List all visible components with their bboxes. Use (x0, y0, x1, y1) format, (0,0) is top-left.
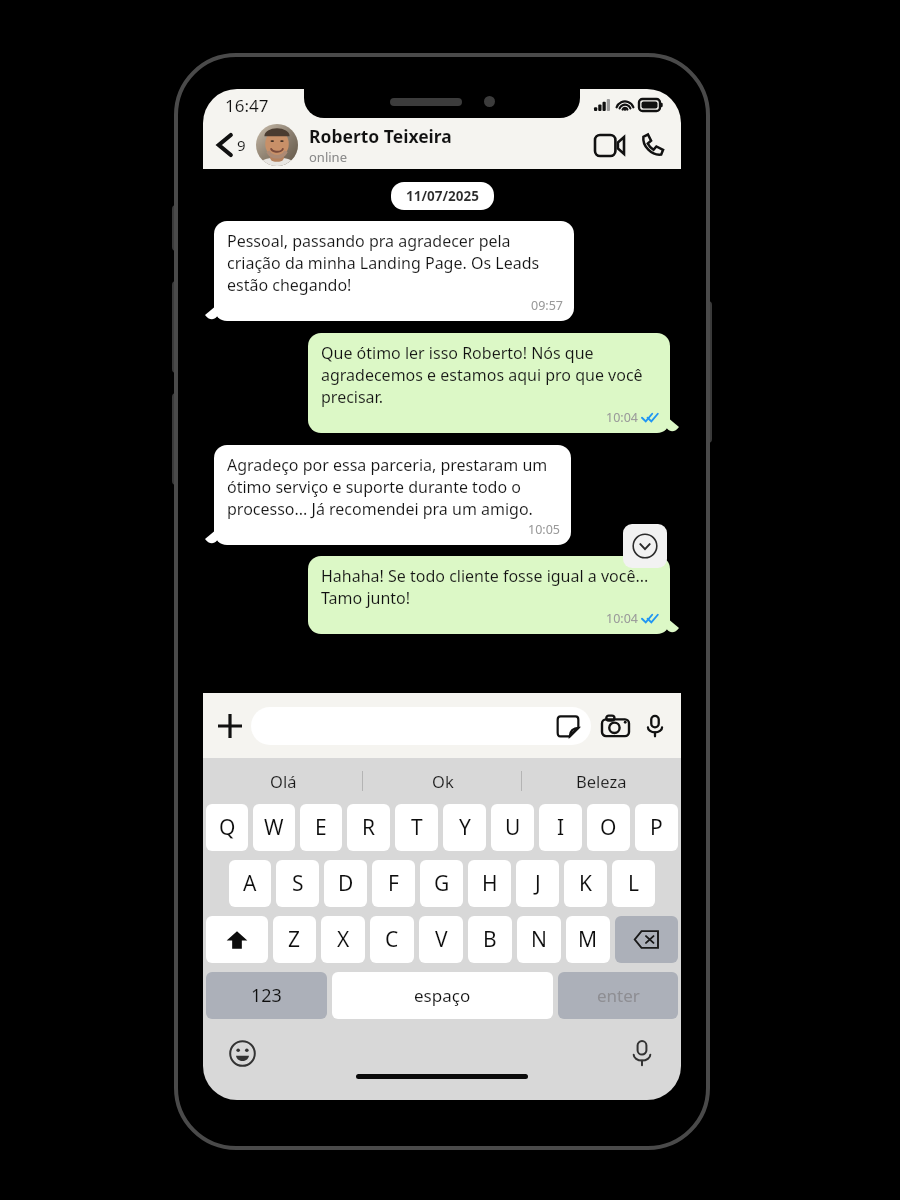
button[interactable]: Hahaha! Se todo cliente fosse igual a vo… (308, 556, 670, 634)
staticText: 9 (237, 135, 246, 155)
button[interactable]: B (468, 916, 512, 963)
button[interactable]: Video call (585, 127, 635, 164)
button[interactable]: P (635, 804, 678, 851)
button[interactable]: Attach (203, 703, 251, 749)
button[interactable]: 11/07/2025 (391, 182, 494, 210)
staticText: Z (288, 925, 301, 954)
button[interactable]: V (419, 916, 463, 963)
staticText: Q (219, 813, 236, 842)
staticText: Roberto Teixeira (309, 124, 452, 148)
button[interactable]: M (566, 916, 610, 963)
button[interactable]: N (517, 916, 561, 963)
button[interactable]: Ok (363, 758, 522, 804)
staticText: J (535, 869, 541, 898)
staticText: N (531, 925, 547, 954)
button[interactable]: L (612, 860, 655, 907)
staticText: 16:47 (225, 94, 269, 117)
staticText: I (557, 813, 565, 842)
staticText: Beleza (576, 770, 627, 792)
button[interactable]: H (468, 860, 511, 907)
button[interactable]: A (229, 860, 271, 907)
staticText: Pessoal, passando pra agradecer pela cri… (227, 230, 563, 296)
button[interactable]: D (324, 860, 367, 907)
staticText: H (482, 869, 498, 898)
button[interactable]: Stickers (557, 715, 591, 737)
staticText: D (338, 869, 354, 898)
button[interactable]: Olá (203, 758, 363, 804)
button[interactable]: Y (443, 804, 486, 851)
button[interactable]: F (372, 860, 415, 907)
button[interactable]: Back, 9 unread (203, 127, 252, 163)
staticText: 09:57 (531, 297, 563, 314)
staticText: T (411, 813, 423, 842)
button[interactable]: X (321, 916, 365, 963)
button[interactable]: 123 (206, 972, 327, 1019)
button[interactable]: T (395, 804, 438, 851)
button[interactable]: Beleza (522, 758, 681, 804)
staticText: W (264, 813, 284, 842)
button[interactable]: Dictate (629, 1040, 655, 1066)
staticText: A (243, 869, 257, 898)
button[interactable]: U (491, 804, 534, 851)
staticText: 10:04 (606, 610, 638, 627)
staticText: online (309, 148, 347, 166)
button[interactable]: Backspace (615, 916, 678, 963)
staticText: 10:04 (606, 409, 638, 426)
staticText: Que ótimo ler isso Roberto! Nós que agra… (321, 342, 659, 408)
staticText: 123 (251, 983, 282, 1008)
staticText: 10:05 (528, 521, 560, 538)
button[interactable]: O (587, 804, 630, 851)
staticText: U (505, 813, 521, 842)
button[interactable]: Z (273, 916, 316, 963)
button[interactable]: Scroll to bottom (623, 524, 667, 568)
button[interactable]: R (347, 804, 390, 851)
button[interactable]: espaço (332, 972, 553, 1019)
staticText: espaço (414, 984, 471, 1007)
button[interactable]: K (564, 860, 607, 907)
staticText: M (578, 925, 598, 954)
button[interactable]: enter (558, 972, 678, 1019)
button[interactable]: J (516, 860, 559, 907)
button[interactable]: W (253, 804, 295, 851)
staticText: P (650, 813, 663, 842)
button[interactable]: E (300, 804, 342, 851)
staticText: Agradeço por essa parceria, prestaram um… (227, 454, 560, 520)
staticText: O (600, 813, 617, 842)
staticText: S (292, 869, 304, 898)
button[interactable]: Camera (591, 705, 640, 747)
button[interactable]: Shift (206, 916, 268, 963)
button[interactable]: Voice call (635, 125, 681, 165)
staticText: C (385, 925, 399, 954)
staticText: R (362, 813, 376, 842)
staticText: X (337, 925, 350, 954)
staticText: L (628, 869, 640, 898)
button[interactable]: S (276, 860, 319, 907)
button[interactable]: Stickers (251, 707, 591, 745)
staticText: G (434, 869, 450, 898)
button[interactable]: Que ótimo ler isso Roberto! Nós que agra… (308, 333, 670, 433)
button[interactable]: Q (206, 804, 248, 851)
button[interactable]: Roberto Teixeira (309, 124, 585, 166)
staticText: 11/07/2025 (406, 187, 479, 205)
staticText: enter (597, 984, 640, 1007)
button[interactable]: Voice message (640, 705, 681, 747)
staticText: V (435, 925, 448, 954)
staticText: Y (459, 813, 471, 842)
button[interactable]: C (370, 916, 414, 963)
staticText: E (315, 813, 327, 842)
button[interactable]: Pessoal, passando pra agradecer pela cri… (214, 221, 574, 321)
button[interactable]: Agradeço por essa parceria, prestaram um… (214, 445, 571, 545)
staticText: F (388, 869, 399, 898)
staticText: K (579, 869, 592, 898)
staticText: Olá (270, 770, 297, 792)
staticText: Ok (432, 770, 454, 792)
button[interactable]: Contact photo (256, 124, 298, 166)
staticText: B (483, 925, 497, 954)
button[interactable]: G (420, 860, 463, 907)
button[interactable]: Emoji (229, 1040, 256, 1067)
button[interactable]: I (539, 804, 582, 851)
staticText: Hahaha! Se todo cliente fosse igual a vo… (321, 565, 659, 609)
